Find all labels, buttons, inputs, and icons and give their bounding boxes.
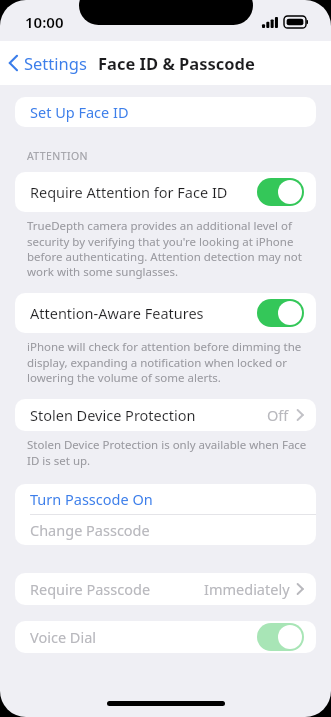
staticText: Settings — [24, 52, 87, 74]
button[interactable]: Attention-Aware Features — [15, 293, 316, 333]
button[interactable]: Change Passcode — [15, 515, 316, 545]
button[interactable]: Toggle on — [257, 299, 304, 327]
button[interactable]: Require Attention for Face ID — [15, 172, 316, 212]
button[interactable]: Toggle on — [257, 178, 304, 206]
staticText: Attention-Aware Features — [30, 303, 257, 323]
staticText: Stolen Device Protection is only availab… — [27, 437, 307, 468]
button[interactable]: Stolen Device Protection — [15, 399, 316, 431]
staticText: Face ID & Passcode — [98, 52, 255, 74]
staticText: Immediately — [204, 579, 290, 599]
button[interactable]: Settings — [0, 46, 93, 80]
staticText: iPhone will check for attention before d… — [27, 339, 307, 385]
staticText: 10:00 — [25, 12, 64, 32]
staticText: TrueDepth camera provides an additional … — [27, 218, 307, 279]
button[interactable]: Toggle on — [257, 623, 304, 651]
staticText: Voice Dial — [30, 627, 257, 647]
staticText: Off — [267, 405, 289, 425]
staticText: Change Passcode — [30, 520, 150, 540]
staticText: Stolen Device Protection — [30, 405, 267, 425]
staticText: ATTENTION — [27, 149, 88, 163]
staticText: Set Up Face ID — [30, 102, 129, 122]
button[interactable]: Turn Passcode On — [15, 484, 316, 514]
staticText: Require Passcode — [30, 579, 204, 599]
button[interactable]: Set Up Face ID — [15, 97, 316, 127]
button[interactable]: Voice Dial — [15, 621, 316, 653]
staticText: Require Attention for Face ID — [30, 182, 257, 202]
staticText: Turn Passcode On — [30, 489, 153, 509]
button[interactable]: Require Passcode — [15, 573, 316, 605]
